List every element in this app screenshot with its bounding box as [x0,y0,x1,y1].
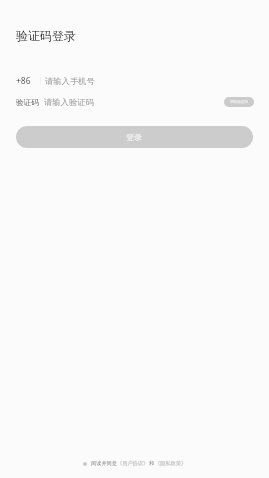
staticText: +86 [16,75,31,87]
button[interactable]: +86 [0,69,269,93]
button[interactable]: 获取验证码 [224,97,254,107]
button[interactable]: 《隐私政策》 [155,460,187,467]
button[interactable]: 《用户协议》 [117,460,149,467]
button[interactable]: 登录 [16,126,253,148]
staticText: 验证码登录 [16,28,76,43]
staticText: 获取验证码 [230,100,248,105]
staticText: 请输入手机号 [45,76,95,86]
staticText: 登录 [126,132,143,142]
button[interactable]: 同意用户协议复选框 [83,462,87,466]
button[interactable]: 请输入验证码 [44,97,94,107]
staticText: 阅读并同意 [91,460,117,467]
staticText: 和 [149,460,155,467]
staticText: 验证码 [16,98,39,107]
